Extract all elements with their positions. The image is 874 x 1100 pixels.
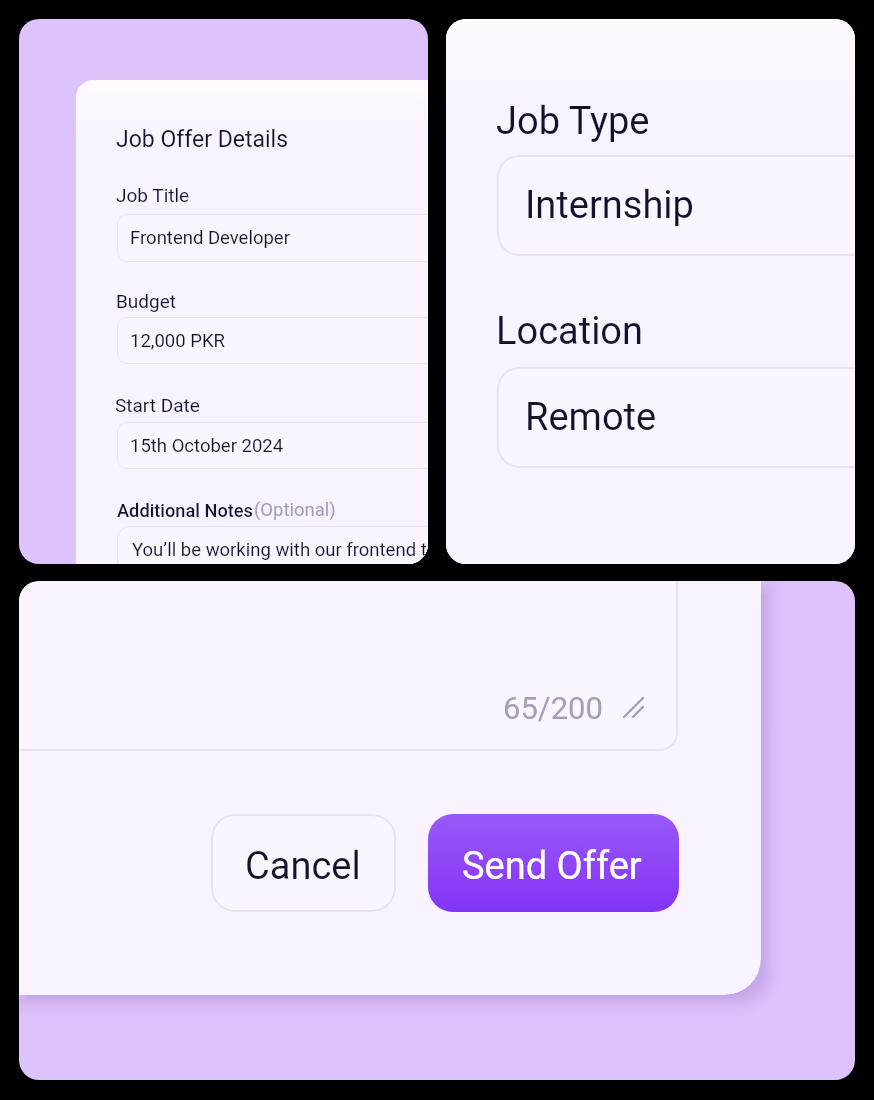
button[interactable]: Resize notes field: [623, 697, 644, 718]
button[interactable]: Internship: [497, 155, 855, 256]
staticText: 15th October 2024: [130, 435, 284, 457]
staticText: Cancel: [245, 844, 361, 889]
staticText: Frontend Developer: [130, 227, 290, 249]
staticText: 12,000 PKR: [130, 330, 225, 352]
button[interactable]: Frontend Developer: [117, 214, 428, 262]
staticText: Internship: [525, 183, 694, 228]
staticText: You’ll be working with our frontend te: [132, 539, 428, 561]
button[interactable]: Cancel: [211, 814, 396, 912]
staticText: Start Date: [115, 394, 200, 416]
button[interactable]: Remote: [497, 367, 855, 468]
staticText: Remote: [525, 395, 657, 440]
staticText: 65/200: [503, 690, 603, 726]
staticText: Job Offer Details: [116, 126, 289, 153]
button[interactable]: Send Offer: [428, 814, 679, 912]
button[interactable]: 65/200: [19, 581, 678, 751]
button[interactable]: 15th October 2024: [117, 422, 428, 469]
staticText: Location: [496, 309, 644, 354]
staticText: (Optional): [254, 499, 336, 521]
staticText: Job Type: [496, 99, 650, 144]
staticText: Job Title: [116, 184, 190, 206]
staticText: Send Offer: [462, 844, 642, 889]
button[interactable]: You’ll be working with our frontend te: [117, 526, 428, 564]
staticText: Budget: [116, 290, 176, 312]
staticText: Additional Notes: [117, 500, 254, 521]
button[interactable]: 12,000 PKR: [117, 317, 428, 364]
